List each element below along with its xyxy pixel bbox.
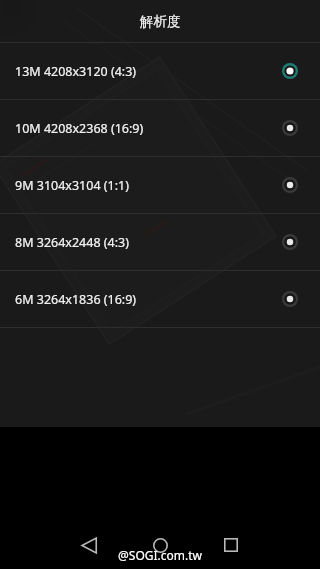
button[interactable]: 9M 3104x3104 (1:1)	[0, 157, 320, 213]
staticText: 13M 4208x3120 (4:3)	[15, 63, 273, 80]
other: Not selected	[273, 225, 307, 259]
other: Not selected	[273, 282, 307, 316]
button[interactable]: Back	[72, 528, 106, 562]
button[interactable]: Recent apps	[214, 528, 248, 562]
staticText: @SOGI.com.tw	[118, 547, 202, 563]
other: Not selected	[273, 168, 307, 202]
button[interactable]: 6M 3264x1836 (16:9)	[0, 271, 320, 327]
button[interactable]: 13M 4208x3120 (4:3)	[0, 43, 320, 99]
staticText: 6M 3264x1836 (16:9)	[15, 291, 273, 308]
staticText: 9M 3104x3104 (1:1)	[15, 177, 273, 194]
button[interactable]: Home	[143, 528, 177, 562]
staticText: 解析度	[140, 13, 181, 30]
other: Selected	[273, 54, 307, 88]
staticText: 8M 3264x2448 (4:3)	[15, 234, 273, 251]
staticText: 10M 4208x2368 (16:9)	[15, 120, 273, 137]
other: Not selected	[273, 111, 307, 145]
button[interactable]: 8M 3264x2448 (4:3)	[0, 214, 320, 270]
button[interactable]: 10M 4208x2368 (16:9)	[0, 100, 320, 156]
